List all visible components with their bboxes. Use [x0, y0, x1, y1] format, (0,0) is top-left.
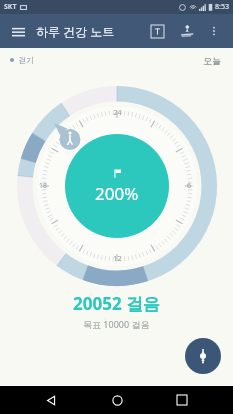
staticText: 6 — [187, 181, 192, 191]
staticText: SKT — [4, 2, 17, 12]
button[interactable]: Home — [103, 386, 131, 414]
button[interactable]: More options — [203, 20, 225, 42]
button[interactable]: Menu — [8, 21, 28, 41]
staticText: 8:53 — [215, 2, 229, 12]
staticText: 걸음 — [126, 294, 160, 315]
staticText: 18 — [39, 181, 48, 191]
staticText: 200% — [95, 182, 139, 205]
button[interactable]: More options — [185, 338, 221, 374]
staticText: 오늘 — [203, 55, 221, 66]
button[interactable]: 오늘 — [201, 53, 223, 68]
staticText: 목표 10000 걸음 — [83, 318, 150, 330]
button[interactable]: Text size — [145, 19, 169, 43]
button[interactable]: Recents — [168, 386, 196, 414]
staticText: 20052 — [73, 292, 122, 315]
button[interactable]: Profile — [175, 19, 199, 43]
staticText: 하루 건강 노트 — [36, 23, 115, 39]
staticText: 12 — [113, 254, 122, 264]
button[interactable]: Back — [37, 386, 65, 414]
staticText: 걷기 — [18, 55, 34, 65]
staticText: 24 — [113, 108, 122, 118]
